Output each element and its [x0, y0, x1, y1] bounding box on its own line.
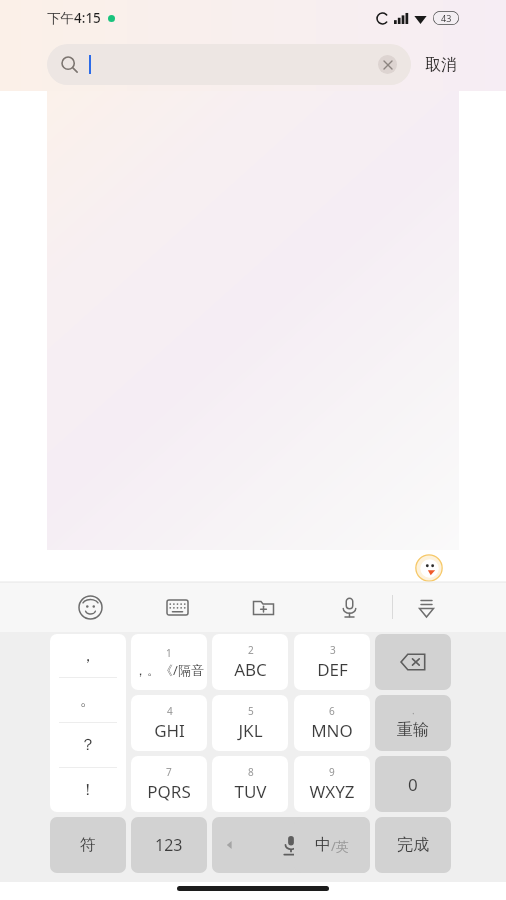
button[interactable]: 3: [294, 634, 370, 690]
staticText: PQRS: [147, 780, 191, 803]
staticText: MNO: [311, 719, 353, 742]
button[interactable]: 4: [131, 695, 207, 751]
button[interactable]: Keyboard layout: [134, 582, 220, 632]
button[interactable]: 0: [375, 756, 451, 812]
staticText: 下午4:15: [47, 9, 101, 27]
staticText: /英: [331, 837, 349, 855]
button[interactable]: 8: [212, 756, 288, 812]
button[interactable]: Space, voice input: [212, 817, 369, 873]
staticText: 中: [315, 835, 331, 855]
staticText: ！: [80, 780, 96, 800]
staticText: 9: [329, 765, 335, 779]
staticText: 1: [166, 646, 172, 660]
staticText: TUV: [234, 780, 267, 803]
button[interactable]: 6: [294, 695, 370, 751]
staticText: 完成: [397, 835, 429, 855]
staticText: 123: [155, 834, 183, 856]
staticText: 8: [248, 765, 254, 779]
button[interactable]: ！: [50, 768, 126, 812]
staticText: 4: [167, 704, 173, 718]
button[interactable]: Voice input: [306, 582, 392, 632]
button[interactable]: Clear: [378, 55, 397, 74]
staticText: 。: [80, 690, 96, 710]
staticText: WXYZ: [309, 780, 355, 803]
staticText: 3: [330, 643, 336, 657]
staticText: 6: [329, 704, 335, 718]
staticText: 重输: [397, 720, 429, 740]
button[interactable]: 取消: [411, 49, 459, 81]
staticText: 0: [408, 773, 418, 796]
staticText: ·: [412, 706, 415, 720]
button[interactable]: Backspace: [375, 634, 451, 690]
staticText: DEF: [317, 658, 348, 681]
button[interactable]: 5: [212, 695, 288, 751]
staticText: 符: [80, 835, 96, 855]
button[interactable]: ·: [375, 695, 451, 751]
staticText: 2: [248, 643, 254, 657]
staticText: ，。《/隔音: [134, 661, 204, 679]
staticText: GHI: [154, 719, 185, 742]
staticText: JKL: [238, 719, 263, 742]
button[interactable]: Emoji: [47, 582, 134, 632]
staticText: ？: [80, 735, 96, 755]
button[interactable]: Search: [47, 44, 411, 85]
button[interactable]: 7: [131, 756, 207, 812]
staticText: 取消: [425, 55, 457, 75]
staticText: 43: [441, 12, 452, 24]
button[interactable]: ？: [50, 723, 126, 767]
staticText: 5: [248, 704, 254, 718]
button[interactable]: 9: [294, 756, 370, 812]
other: Search: [61, 56, 78, 73]
button[interactable]: Sticker: [415, 554, 443, 582]
staticText: ，: [80, 646, 96, 666]
button[interactable]: 中: [294, 817, 370, 873]
staticText: 7: [166, 765, 172, 779]
button[interactable]: 。: [50, 678, 126, 722]
button[interactable]: ，: [50, 634, 126, 677]
button[interactable]: 符: [50, 817, 126, 873]
staticText: ABC: [234, 658, 267, 681]
button[interactable]: 123: [131, 817, 207, 873]
button[interactable]: Hide keyboard: [393, 582, 459, 632]
button[interactable]: Add: [220, 582, 306, 632]
button[interactable]: 1: [131, 634, 207, 690]
button[interactable]: 2: [212, 634, 288, 690]
button[interactable]: 完成: [375, 817, 451, 873]
